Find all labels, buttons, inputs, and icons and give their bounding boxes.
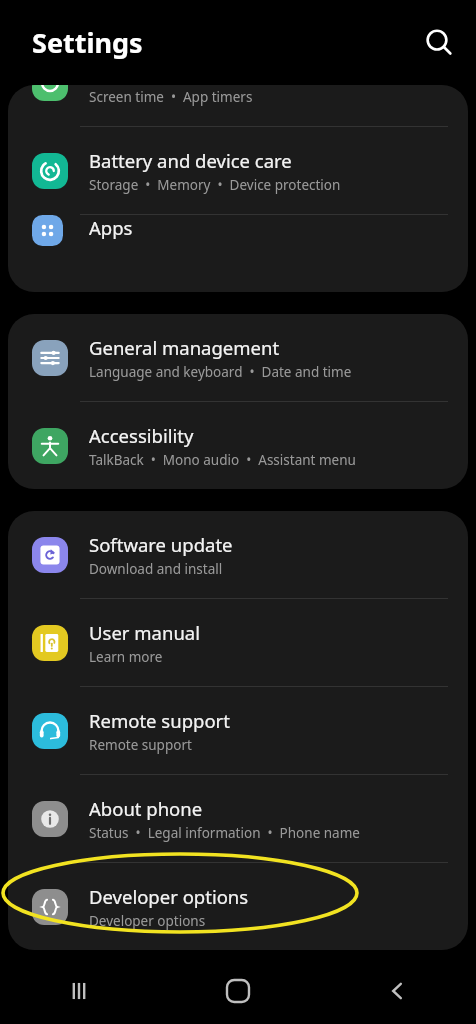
staticText: Apps [89,215,133,240]
staticText: Software update [89,532,233,557]
staticText: Settings [32,24,143,61]
staticText: TalkBack • Mono audio • Assistant menu [89,451,356,469]
button[interactable]: Search [413,19,461,67]
staticText: Accessibility [89,423,194,448]
staticText: Language and keyboard • Date and time [89,363,352,381]
staticText: Battery and device care [89,148,292,173]
button[interactable]: About phone [8,775,468,862]
button[interactable]: Accessibility [8,402,468,489]
button[interactable]: Battery and device care [8,127,468,214]
staticText: Remote support [89,736,192,754]
button[interactable]: Digital Wellbeing [8,85,468,126]
staticText: Remote support [89,708,230,733]
staticText: Screen time • App timers [89,88,253,106]
button[interactable]: Software update [8,511,468,598]
staticText: Developer options [89,884,249,909]
staticText: General management [89,335,280,360]
button[interactable]: Apps [8,215,468,246]
staticText: Learn more [89,648,163,666]
button[interactable]: Recents [0,958,158,1024]
staticText: Developer options [89,912,206,930]
button[interactable]: User manual [8,599,468,686]
staticText: Storage • Memory • Device protection [89,176,341,194]
staticText: Status • Legal information • Phone name [89,824,360,842]
button[interactable]: Developer options [8,863,468,950]
staticText: About phone [89,796,203,821]
staticText: User manual [89,620,200,645]
button[interactable]: Home [158,958,317,1024]
button[interactable]: General management [8,314,468,401]
button[interactable]: Remote support [8,687,468,774]
button[interactable]: Back [317,958,476,1024]
staticText: Download and install [89,560,223,578]
